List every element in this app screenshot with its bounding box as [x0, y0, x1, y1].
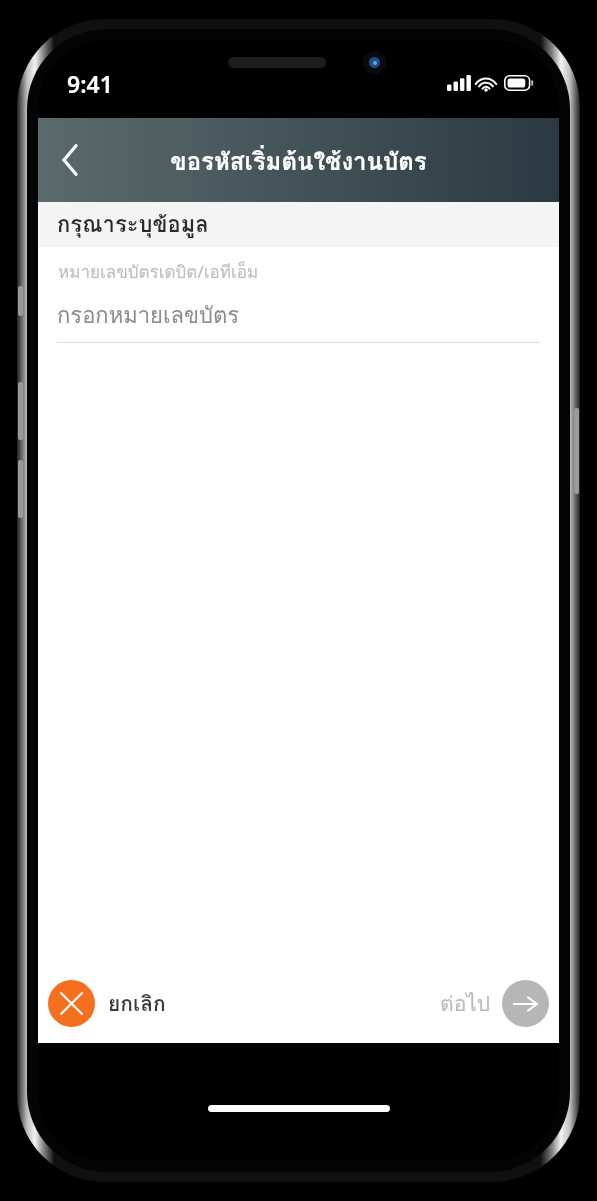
staticText: ขอรหัสเริ่มต้นใช้งานบัตร	[170, 142, 427, 180]
button[interactable]: กรอกหมายเลขบัตร	[57, 298, 540, 343]
staticText: กรุณาระบุข้อมูล	[57, 207, 209, 242]
staticText: 9:41	[67, 68, 113, 99]
button[interactable]: ต่อไป	[440, 980, 549, 1027]
button[interactable]: ยกเลิก	[48, 980, 166, 1027]
staticText: ยกเลิก	[108, 987, 166, 1020]
staticText: หมายเลขบัตรเดบิต/เอทีเอ็ม	[58, 258, 259, 285]
button[interactable]: Back	[38, 118, 102, 202]
staticText: กรอกหมายเลขบัตร	[57, 298, 240, 333]
staticText: ต่อไป	[440, 987, 491, 1020]
